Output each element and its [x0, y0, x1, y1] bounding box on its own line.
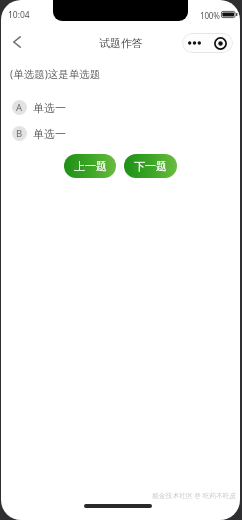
staticText: 下一题	[134, 159, 167, 173]
staticText: 单选一	[33, 101, 66, 115]
button[interactable]: Close mini program	[207, 33, 233, 53]
staticText: 10:04	[8, 9, 30, 21]
staticText: 100%	[200, 10, 220, 21]
button[interactable]: More options	[182, 33, 207, 53]
button[interactable]: 下一题	[124, 154, 177, 178]
button[interactable]: A	[1, 100, 240, 115]
staticText: (单选题)这是单选题	[10, 67, 101, 81]
button[interactable]: Back	[4, 29, 30, 55]
staticText: 单选一	[33, 127, 66, 141]
staticText: B	[16, 127, 23, 140]
staticText: A	[16, 101, 23, 114]
button[interactable]: B	[1, 126, 240, 141]
staticText: 掘金技术社区 @ 吃药不吃皮	[152, 491, 237, 500]
staticText: 试题作答	[99, 36, 143, 50]
button[interactable]: 上一题	[64, 154, 116, 178]
staticText: 上一题	[74, 159, 107, 173]
